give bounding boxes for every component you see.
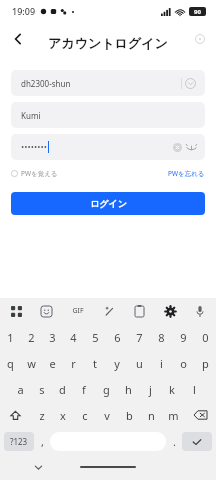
button[interactable]: Settings: [160, 301, 180, 321]
staticText: d: [59, 382, 66, 397]
button[interactable]: l: [183, 376, 205, 402]
staticText: 2: [28, 330, 35, 345]
button[interactable]: d: [52, 376, 73, 402]
button[interactable]: Show password: [185, 141, 198, 154]
button[interactable]: b: [118, 402, 140, 428]
button[interactable]: a: [10, 376, 31, 402]
staticText: m: [168, 408, 179, 423]
button[interactable]: .: [166, 431, 182, 451]
button[interactable]: dh2300-shun: [11, 70, 205, 96]
button[interactable]: 3: [42, 324, 63, 350]
staticText: j: [149, 382, 152, 397]
button[interactable]: Clear password: [11, 134, 205, 160]
button[interactable]: 9: [172, 324, 194, 350]
button[interactable]: Help: [190, 29, 210, 49]
button[interactable]: e: [42, 350, 63, 376]
button[interactable]: Voice input: [190, 301, 210, 321]
button[interactable]: PWを忘れる: [168, 169, 205, 178]
staticText: ?123: [10, 436, 28, 447]
button[interactable]: Clipboard: [129, 301, 149, 321]
button[interactable]: ログイン: [11, 192, 205, 215]
button[interactable]: o: [172, 350, 194, 376]
staticText: 5: [92, 330, 99, 345]
staticText: n: [148, 408, 155, 423]
staticText: b: [126, 408, 133, 423]
button[interactable]: r: [63, 350, 84, 376]
staticText: g: [103, 382, 110, 397]
staticText: PWを覚える: [21, 169, 58, 178]
button[interactable]: z: [31, 402, 52, 428]
button[interactable]: 1: [0, 324, 21, 350]
staticText: 90: [194, 8, 201, 16]
staticText: PWを忘れる: [168, 169, 205, 178]
button[interactable]: c: [74, 402, 96, 428]
button[interactable]: 0: [194, 324, 216, 350]
button[interactable]: i: [150, 350, 172, 376]
button[interactable]: Hide keyboard: [29, 458, 47, 476]
button[interactable]: Emoji: [36, 301, 56, 321]
staticText: 19:09: [12, 5, 36, 17]
staticText: アカウントログイン: [48, 35, 168, 51]
button[interactable]: f: [73, 376, 95, 402]
staticText: x: [60, 408, 66, 423]
button[interactable]: g: [95, 376, 117, 402]
button[interactable]: q: [0, 350, 21, 376]
staticText: v: [104, 408, 110, 423]
button[interactable]: w: [21, 350, 42, 376]
staticText: i: [160, 356, 163, 371]
button[interactable]: Back: [6, 27, 30, 51]
staticText: dh2300-shun: [21, 78, 71, 89]
staticText: 8: [158, 330, 165, 345]
button[interactable]: v: [96, 402, 118, 428]
button[interactable]: t: [84, 350, 106, 376]
staticText: 6: [114, 330, 121, 345]
staticText: k: [169, 382, 175, 397]
staticText: 0: [202, 330, 209, 345]
button[interactable]: Backspace: [184, 402, 216, 428]
button[interactable]: ?123: [4, 432, 34, 451]
button[interactable]: Enter: [182, 432, 212, 451]
staticText: 3: [49, 330, 56, 345]
button[interactable]: s: [31, 376, 52, 402]
staticText: f: [82, 382, 86, 397]
staticText: ,: [41, 434, 44, 449]
staticText: u: [136, 356, 143, 371]
staticText: y: [114, 356, 120, 371]
staticText: o: [180, 356, 187, 371]
button[interactable]: y: [106, 350, 128, 376]
staticText: Kumi: [21, 110, 41, 121]
button[interactable]: j: [139, 376, 161, 402]
button[interactable]: h: [117, 376, 139, 402]
button[interactable]: Translate: [99, 301, 119, 321]
button[interactable]: Clear password: [171, 141, 183, 153]
button[interactable]: 4: [63, 324, 84, 350]
staticText: l: [193, 382, 196, 397]
button[interactable]: p: [194, 350, 216, 376]
button[interactable]: Kumi: [11, 102, 205, 128]
button[interactable]: Shift: [0, 402, 31, 428]
button[interactable]: GIF: [67, 301, 89, 321]
button[interactable]: n: [140, 402, 162, 428]
staticText: .: [173, 434, 176, 449]
button[interactable]: 6: [106, 324, 128, 350]
button[interactable]: 2: [21, 324, 42, 350]
button[interactable]: 7: [128, 324, 150, 350]
staticText: 9: [180, 330, 187, 345]
staticText: p: [202, 356, 209, 371]
button[interactable]: x: [52, 402, 74, 428]
staticText: c: [82, 408, 88, 423]
button[interactable]: m: [162, 402, 184, 428]
button[interactable]: 5: [84, 324, 106, 350]
button[interactable]: Apps: [6, 301, 26, 321]
staticText: ログイン: [90, 198, 127, 209]
staticText: GIF: [72, 306, 84, 316]
button[interactable]: u: [128, 350, 150, 376]
button[interactable]: 8: [150, 324, 172, 350]
button[interactable]: PWを覚える: [11, 169, 58, 178]
staticText: s: [39, 382, 45, 397]
button[interactable]: k: [161, 376, 183, 402]
button[interactable]: Expand accounts: [183, 76, 197, 90]
button[interactable]: ,: [34, 431, 50, 451]
staticText: 4: [70, 330, 77, 345]
